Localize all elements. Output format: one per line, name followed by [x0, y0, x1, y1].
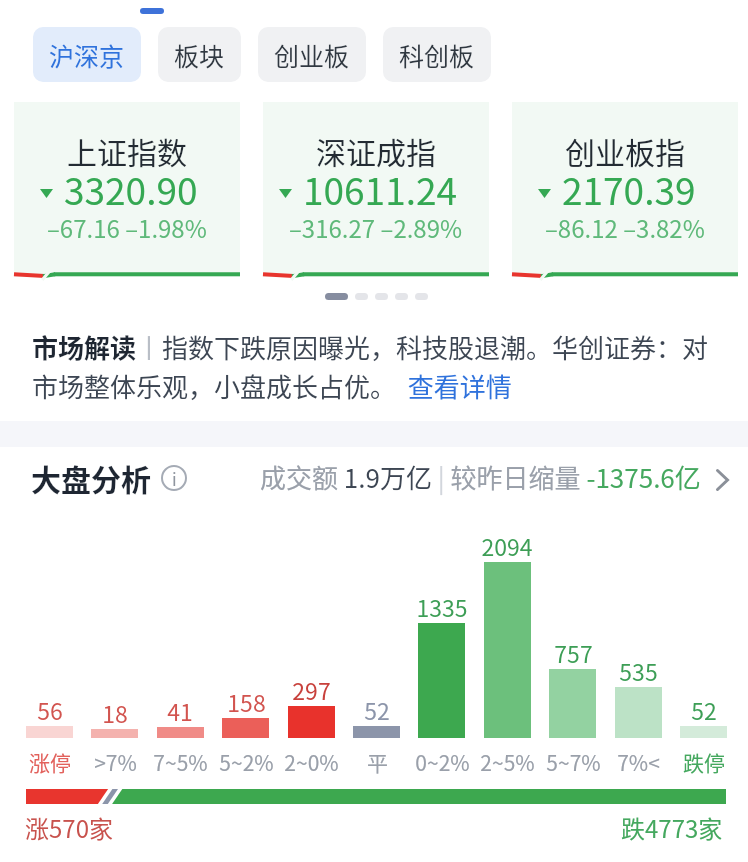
staticText: >7% [94, 747, 137, 777]
staticText: 52 [364, 693, 390, 726]
button[interactable]: 科创板 [383, 27, 491, 82]
staticText: 成交额 1.9万亿 | 较昨日缩量 -1375.6亿 [260, 458, 701, 496]
staticText: 2~5% [480, 747, 535, 777]
button[interactable]: 大盘分析 [31, 456, 727, 499]
staticText: 板块 [174, 37, 225, 73]
button[interactable]: 深证成指 [263, 102, 489, 277]
staticText: 2170.39 [562, 162, 696, 216]
staticText: 沪深京 [49, 37, 125, 73]
staticText: 上证指数 [67, 129, 187, 172]
staticText: 7%< [617, 747, 660, 777]
staticText: i [172, 466, 177, 491]
button[interactable]: 成交额 1.9万亿 | 较昨日缩量 -1375.6亿 [260, 458, 701, 496]
staticText: –67.16 –1.98% [47, 210, 207, 245]
button[interactable]: 沪深京 [33, 27, 141, 82]
staticText: 涨570家 [25, 810, 113, 845]
staticText: 科创板 [399, 37, 475, 73]
staticText: –86.12 –3.82% [545, 210, 705, 245]
staticText: 涨停 [29, 747, 71, 777]
button[interactable]: 市场解读丨指数下跌原因曝光，科技股退潮。华创证券：对市场整体乐观，小盘成长占优。… [32, 328, 722, 405]
staticText: 158 [227, 685, 266, 718]
staticText: 深证成指 [316, 129, 436, 172]
staticText: 2~0% [284, 747, 339, 777]
button[interactable]: 创业板指 [512, 102, 738, 277]
staticText: 5~7% [546, 747, 601, 777]
staticText: 5~2% [219, 747, 274, 777]
button[interactable]: 上证指数 [14, 102, 240, 277]
staticText: 2094 [481, 529, 533, 562]
button[interactable]: 板块 [158, 27, 241, 82]
staticText: 大盘分析 [31, 456, 151, 499]
staticText: 创业板 [274, 37, 350, 73]
staticText: 跌4773家 [621, 810, 723, 845]
staticText: 跌停 [683, 747, 725, 777]
staticText: 10611.24 [303, 162, 458, 216]
staticText: 0~2% [415, 747, 470, 777]
staticText: 1335 [416, 590, 468, 623]
staticText: 41 [167, 694, 193, 727]
staticText: 3320.90 [64, 162, 198, 216]
staticText: 7~5% [153, 747, 208, 777]
staticText: 市场解读丨指数下跌原因曝光，科技股退潮。华创证券：对市场整体乐观，小盘成长占优。… [32, 328, 722, 405]
button[interactable]: 创业板 [258, 27, 366, 82]
staticText: 297 [292, 673, 331, 706]
staticText: 535 [619, 654, 658, 687]
staticText: 757 [554, 636, 593, 669]
staticText: 52 [691, 693, 717, 726]
staticText: 56 [37, 693, 63, 726]
staticText: 18 [102, 696, 128, 729]
button[interactable]: More market analysis [709, 462, 735, 498]
staticText: 平 [367, 747, 388, 777]
staticText: –316.27 –2.89% [289, 210, 463, 245]
staticText: 创业板指 [565, 129, 685, 172]
